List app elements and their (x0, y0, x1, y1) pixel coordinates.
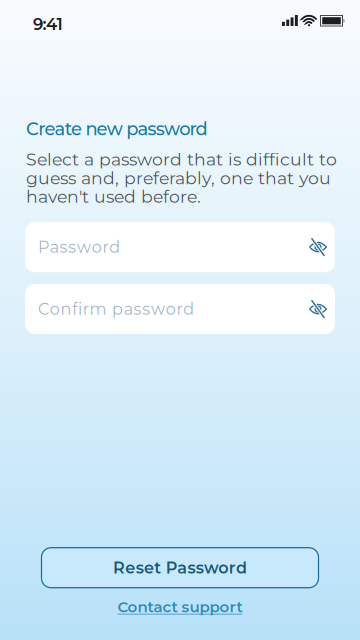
staticText: Select a password that is difficult to g… (26, 149, 337, 207)
staticText: Password (38, 237, 120, 257)
staticText: Reset Password (113, 558, 247, 577)
button[interactable]: Contact support (117, 588, 242, 616)
staticText: Contact support (117, 598, 242, 616)
button[interactable]: Show confirm password (305, 298, 331, 321)
staticText: 9:41 (33, 14, 62, 34)
button[interactable]: Reset Password (41, 548, 318, 588)
button[interactable]: Show password (305, 236, 331, 259)
staticText: Confirm password (38, 299, 194, 319)
staticText: Create new password (26, 118, 208, 140)
